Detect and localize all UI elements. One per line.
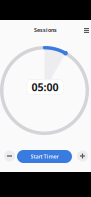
button[interactable]: Start Timer: [17, 150, 72, 163]
staticText: Sessions: [34, 26, 57, 34]
staticText: Start Timer: [30, 153, 58, 160]
staticText: 05:00: [31, 80, 58, 94]
button[interactable]: Decrease duration: [4, 150, 15, 161]
button[interactable]: Menu: [81, 25, 91, 36]
button[interactable]: Increase duration: [77, 150, 88, 161]
